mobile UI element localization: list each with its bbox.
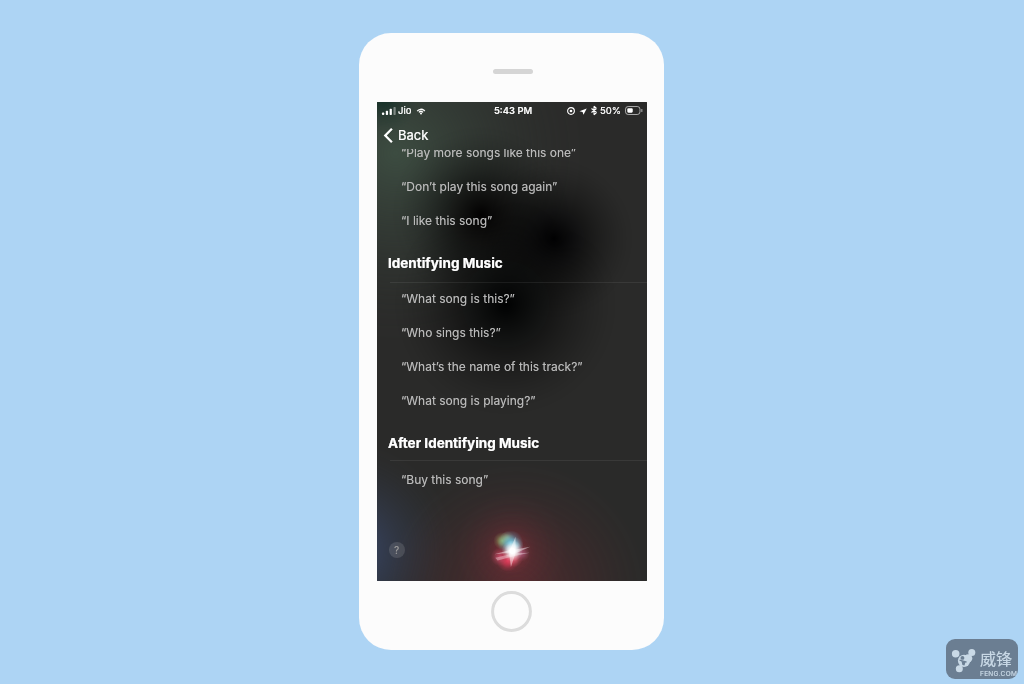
staticText: Back: [398, 127, 429, 143]
staticText: “Play more songs like this one”: [401, 149, 577, 160]
button[interactable]: “What song is this?”: [377, 281, 647, 315]
staticText: “What song is playing?”: [401, 393, 536, 408]
staticText: “I like this song”: [401, 213, 493, 228]
staticText: “Buy this song”: [401, 472, 489, 487]
staticText: ?: [394, 544, 400, 556]
button[interactable]: Feng.com watermark: [946, 639, 1018, 679]
staticText: “Don’t play this song again”: [401, 179, 558, 194]
button[interactable]: “Play more songs like this one”: [377, 149, 647, 169]
button[interactable]: “I like this song”: [377, 203, 647, 237]
staticText: Jio: [398, 105, 412, 116]
staticText: 5:43 PM: [494, 105, 533, 116]
button[interactable]: “Buy this song”: [377, 462, 647, 496]
button[interactable]: “What song is playing?”: [377, 383, 647, 417]
staticText: Identifying Music: [388, 255, 503, 271]
staticText: After Identifying Music: [388, 435, 540, 451]
button[interactable]: Back: [384, 122, 446, 148]
staticText: “Who sings this?”: [401, 325, 501, 340]
staticText: FENG.COM: [980, 670, 1018, 678]
button[interactable]: Help: [389, 542, 405, 558]
button[interactable]: Siri: [487, 527, 533, 573]
staticText: “What’s the name of this track?”: [401, 359, 583, 374]
button[interactable]: “Who sings this?”: [377, 315, 647, 349]
staticText: 威锋: [980, 646, 1013, 669]
button[interactable]: “What’s the name of this track?”: [377, 349, 647, 383]
staticText: 50%: [600, 105, 622, 116]
staticText: “What song is this?”: [401, 291, 515, 306]
button[interactable]: “Don’t play this song again”: [377, 169, 647, 203]
